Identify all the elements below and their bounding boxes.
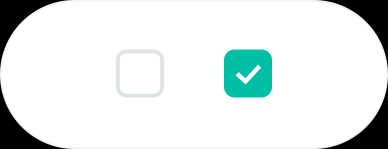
- button[interactable]: Checked checkbox: [224, 49, 272, 97]
- button[interactable]: Unchecked checkbox: [116, 49, 164, 97]
